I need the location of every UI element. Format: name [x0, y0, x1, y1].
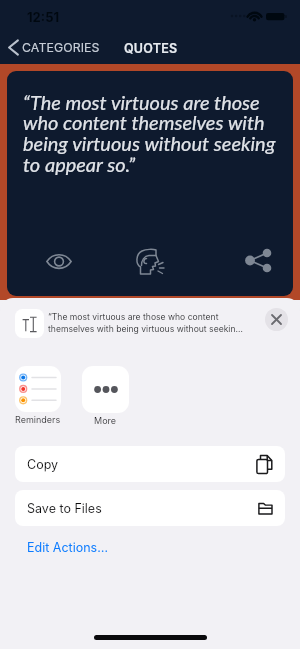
- staticText: CATEGORIES: [22, 40, 100, 55]
- staticText: “The most virtuous are those who content…: [23, 90, 285, 177]
- staticText: QUOTES: [124, 41, 178, 56]
- staticText: More: [94, 415, 117, 426]
- button[interactable]: Copy: [15, 446, 285, 482]
- button[interactable]: Speak quote: [131, 243, 168, 280]
- button[interactable]: CATEGORIES: [8, 38, 100, 56]
- button[interactable]: Preview: [40, 243, 77, 280]
- staticText: Save to Files: [27, 501, 102, 516]
- staticText: 12:51: [27, 9, 60, 25]
- button[interactable]: Edit Actions…: [27, 540, 108, 555]
- button[interactable]: Share: [240, 242, 277, 279]
- staticText: Reminders: [15, 414, 61, 425]
- button[interactable]: Close: [265, 308, 288, 331]
- button[interactable]: Save to Files: [15, 490, 285, 526]
- staticText: Copy: [27, 457, 59, 472]
- button[interactable]: [15, 366, 61, 412]
- staticText: “The most virtuous are those who content…: [48, 312, 262, 334]
- button[interactable]: [82, 366, 129, 413]
